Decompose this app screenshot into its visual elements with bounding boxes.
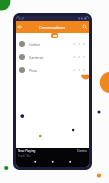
- staticText: Conversations: [39, 25, 66, 30]
- staticText: Track Title: [18, 154, 31, 158]
- button[interactable]: New message: [51, 33, 58, 38]
- button[interactable]: Back: [16, 23, 24, 31]
- button[interactable]: Gardener: [16, 50, 89, 63]
- button[interactable]: Phua: [16, 63, 89, 76]
- staticText: Dismiss: [77, 149, 87, 153]
- button[interactable]: Carlton: [16, 37, 89, 50]
- staticText: Gardener: [29, 55, 44, 59]
- staticText: Now Playing: [18, 149, 36, 153]
- staticText: Phua: [29, 68, 37, 72]
- staticText: Carlton: [29, 42, 41, 46]
- button[interactable]: Search: [81, 23, 89, 31]
- staticText: 9:41: [18, 16, 25, 21]
